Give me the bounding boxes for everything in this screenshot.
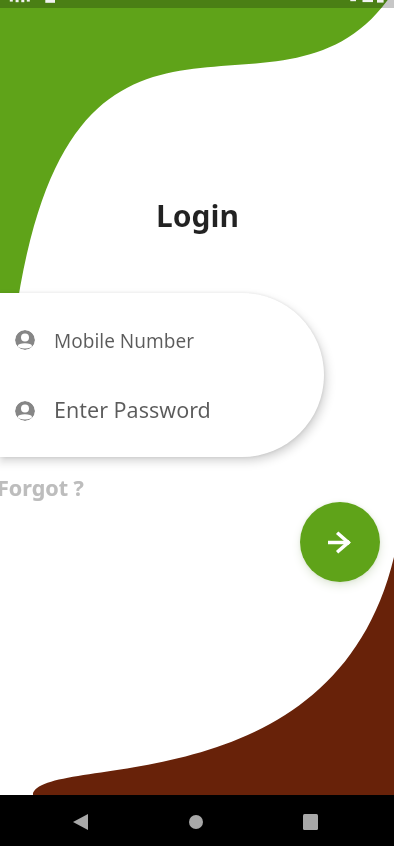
button[interactable]: Enter Password (0, 392, 324, 429)
staticText: Enter Password (54, 395, 211, 424)
staticText: Mobile Number (54, 328, 195, 354)
button[interactable]: Back (40, 795, 120, 846)
button[interactable]: Forgot ? (0, 468, 91, 507)
button[interactable]: Mobile Number (0, 321, 324, 358)
button[interactable]: Sign in (300, 502, 380, 582)
button[interactable]: Home (156, 795, 236, 846)
button[interactable]: Recent apps (270, 795, 350, 846)
staticText: Forgot ? (0, 473, 84, 502)
staticText: Login (156, 195, 239, 236)
